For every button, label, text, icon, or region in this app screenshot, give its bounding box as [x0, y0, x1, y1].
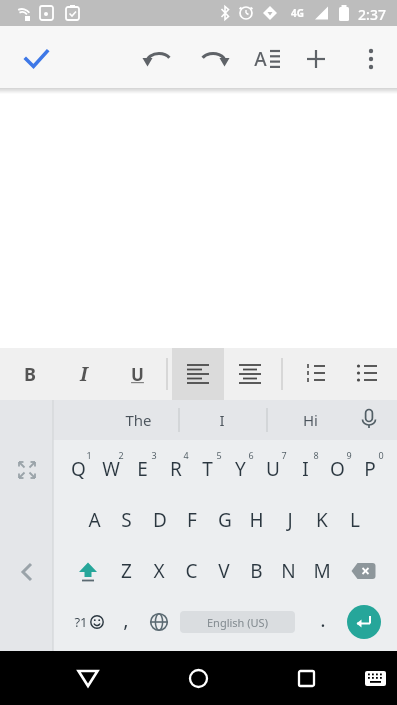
button[interactable]: I: [192, 402, 252, 438]
button[interactable]: W: [95, 445, 126, 493]
button[interactable]: [244, 35, 292, 83]
button[interactable]: [189, 35, 237, 83]
button[interactable]: F: [176, 496, 207, 544]
button[interactable]: English (US): [180, 611, 295, 633]
staticText: P: [364, 456, 376, 482]
button[interactable]: L: [339, 496, 370, 544]
staticText: 6: [248, 449, 254, 461]
button[interactable]: [343, 547, 383, 595]
staticText: A: [88, 507, 101, 533]
button[interactable]: [58, 651, 118, 705]
staticText: Q: [71, 456, 86, 482]
staticText: Hi: [303, 410, 318, 430]
staticText: 9: [346, 449, 352, 461]
button[interactable]: [168, 651, 228, 705]
staticText: T: [202, 456, 213, 482]
staticText: D: [153, 507, 167, 533]
button[interactable]: U: [257, 445, 288, 493]
button[interactable]: [226, 348, 274, 400]
button[interactable]: [343, 348, 391, 400]
button[interactable]: B: [241, 547, 272, 595]
button[interactable]: D: [144, 496, 175, 544]
button[interactable]: [12, 35, 60, 83]
staticText: 3: [151, 449, 157, 461]
staticText: O: [330, 456, 345, 482]
staticText: English (US): [207, 615, 268, 630]
button[interactable]: K: [306, 496, 337, 544]
button[interactable]: [349, 400, 389, 440]
staticText: 4: [183, 449, 189, 461]
button[interactable]: Hi: [280, 402, 340, 438]
button[interactable]: [276, 651, 336, 705]
staticText: N: [281, 558, 296, 584]
button[interactable]: C: [176, 547, 207, 595]
button[interactable]: [5, 448, 49, 492]
staticText: K: [316, 507, 328, 533]
staticText: W: [102, 456, 120, 482]
staticText: G: [218, 507, 232, 533]
staticText: E: [137, 456, 148, 482]
button[interactable]: .: [309, 597, 337, 641]
staticText: B: [24, 362, 36, 387]
button[interactable]: P: [354, 445, 385, 493]
button[interactable]: O: [322, 445, 353, 493]
staticText: 1: [86, 449, 92, 461]
button[interactable]: Q: [63, 445, 94, 493]
button[interactable]: S: [111, 496, 142, 544]
button[interactable]: A: [79, 496, 110, 544]
button[interactable]: J: [274, 496, 305, 544]
staticText: F: [187, 507, 197, 533]
staticText: U: [131, 363, 144, 386]
button[interactable]: [77, 600, 117, 644]
button[interactable]: M: [306, 547, 337, 595]
button[interactable]: [290, 348, 338, 400]
staticText: 4G: [291, 6, 304, 20]
button[interactable]: U: [117, 354, 157, 394]
staticText: A: [254, 46, 267, 72]
staticText: ,: [123, 606, 129, 633]
staticText: V: [218, 558, 230, 584]
button[interactable]: ?1: [68, 600, 94, 644]
button[interactable]: Z: [111, 547, 142, 595]
staticText: X: [153, 558, 165, 584]
button[interactable]: [347, 605, 381, 639]
button[interactable]: ,: [112, 597, 140, 641]
button[interactable]: G: [209, 496, 240, 544]
button[interactable]: [142, 600, 176, 644]
staticText: B: [250, 558, 263, 584]
button[interactable]: H: [241, 496, 272, 544]
staticText: 8: [313, 449, 319, 461]
button[interactable]: E: [127, 445, 158, 493]
button[interactable]: [4, 550, 48, 594]
staticText: S: [121, 507, 132, 533]
button[interactable]: R: [160, 445, 191, 493]
button[interactable]: I: [290, 445, 321, 493]
button[interactable]: X: [143, 547, 174, 595]
staticText: ?1: [74, 613, 88, 631]
staticText: 2:37: [358, 5, 386, 23]
staticText: 7: [281, 449, 287, 461]
staticText: I: [219, 410, 225, 430]
button[interactable]: [70, 547, 106, 595]
staticText: I: [302, 456, 309, 482]
button[interactable]: N: [273, 547, 304, 595]
button[interactable]: I: [64, 354, 104, 394]
staticText: M: [313, 558, 331, 584]
staticText: I: [80, 361, 88, 387]
button[interactable]: V: [208, 547, 239, 595]
button[interactable]: [292, 35, 340, 83]
button[interactable]: B: [10, 354, 50, 394]
staticText: Z: [121, 558, 132, 584]
button[interactable]: [347, 35, 395, 83]
button[interactable]: The: [103, 402, 173, 438]
button[interactable]: [135, 35, 183, 83]
staticText: 0: [378, 449, 384, 461]
staticText: U: [266, 456, 280, 482]
button[interactable]: [172, 348, 224, 400]
button[interactable]: [353, 651, 397, 705]
button[interactable]: Y: [225, 445, 256, 493]
staticText: Y: [235, 456, 246, 482]
staticText: J: [287, 507, 293, 533]
button[interactable]: T: [192, 445, 223, 493]
staticText: C: [185, 558, 198, 584]
